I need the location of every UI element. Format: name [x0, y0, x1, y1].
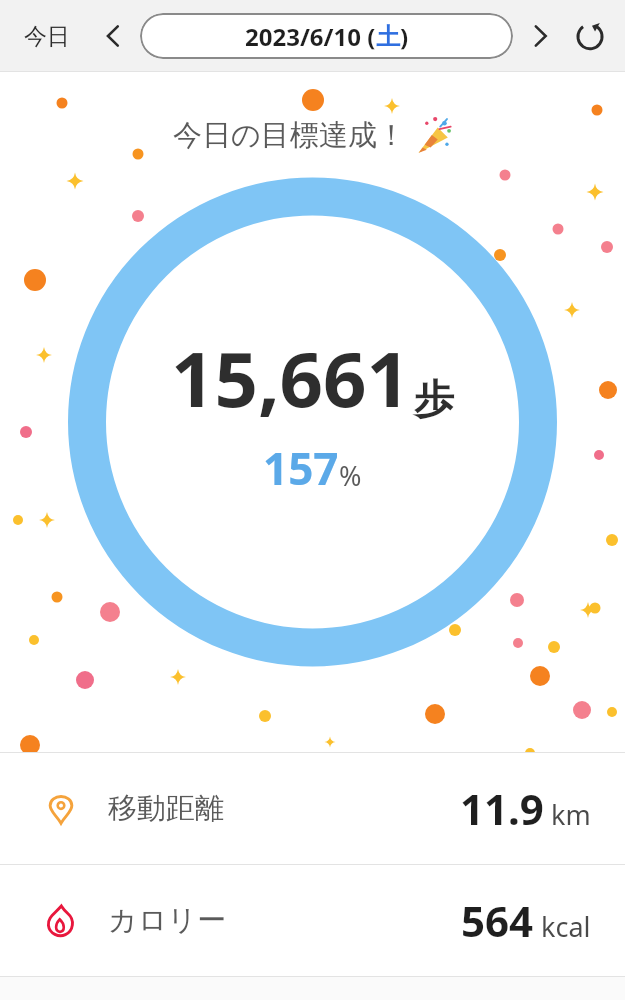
button[interactable]: 今日 [18, 16, 76, 57]
staticText: 今日の目標達成！ [173, 117, 406, 154]
button[interactable]: 2023/6/10 ( [140, 13, 513, 59]
staticText: km [551, 796, 591, 833]
staticText: 15,661 [171, 326, 411, 430]
staticText: 今日 [24, 22, 70, 51]
staticText: kcal [541, 908, 591, 945]
staticText: 564 [461, 892, 534, 949]
staticText: 土 [376, 22, 400, 52]
button[interactable]: Previous day [98, 21, 128, 51]
staticText: カロリー [108, 902, 227, 939]
staticText: 157 [263, 438, 339, 498]
button[interactable]: 移動距離 [0, 753, 625, 864]
staticText: 歩 [414, 374, 454, 424]
button[interactable]: カロリー [0, 865, 625, 976]
staticText: 2023/6/10 ( [245, 20, 376, 53]
staticText: 移動距離 [108, 790, 224, 827]
staticText: ) [400, 20, 409, 53]
button[interactable]: Refresh [573, 19, 607, 53]
staticText: % [339, 457, 362, 494]
staticText: 11.9 [460, 780, 544, 837]
button[interactable]: Next day [525, 21, 555, 51]
